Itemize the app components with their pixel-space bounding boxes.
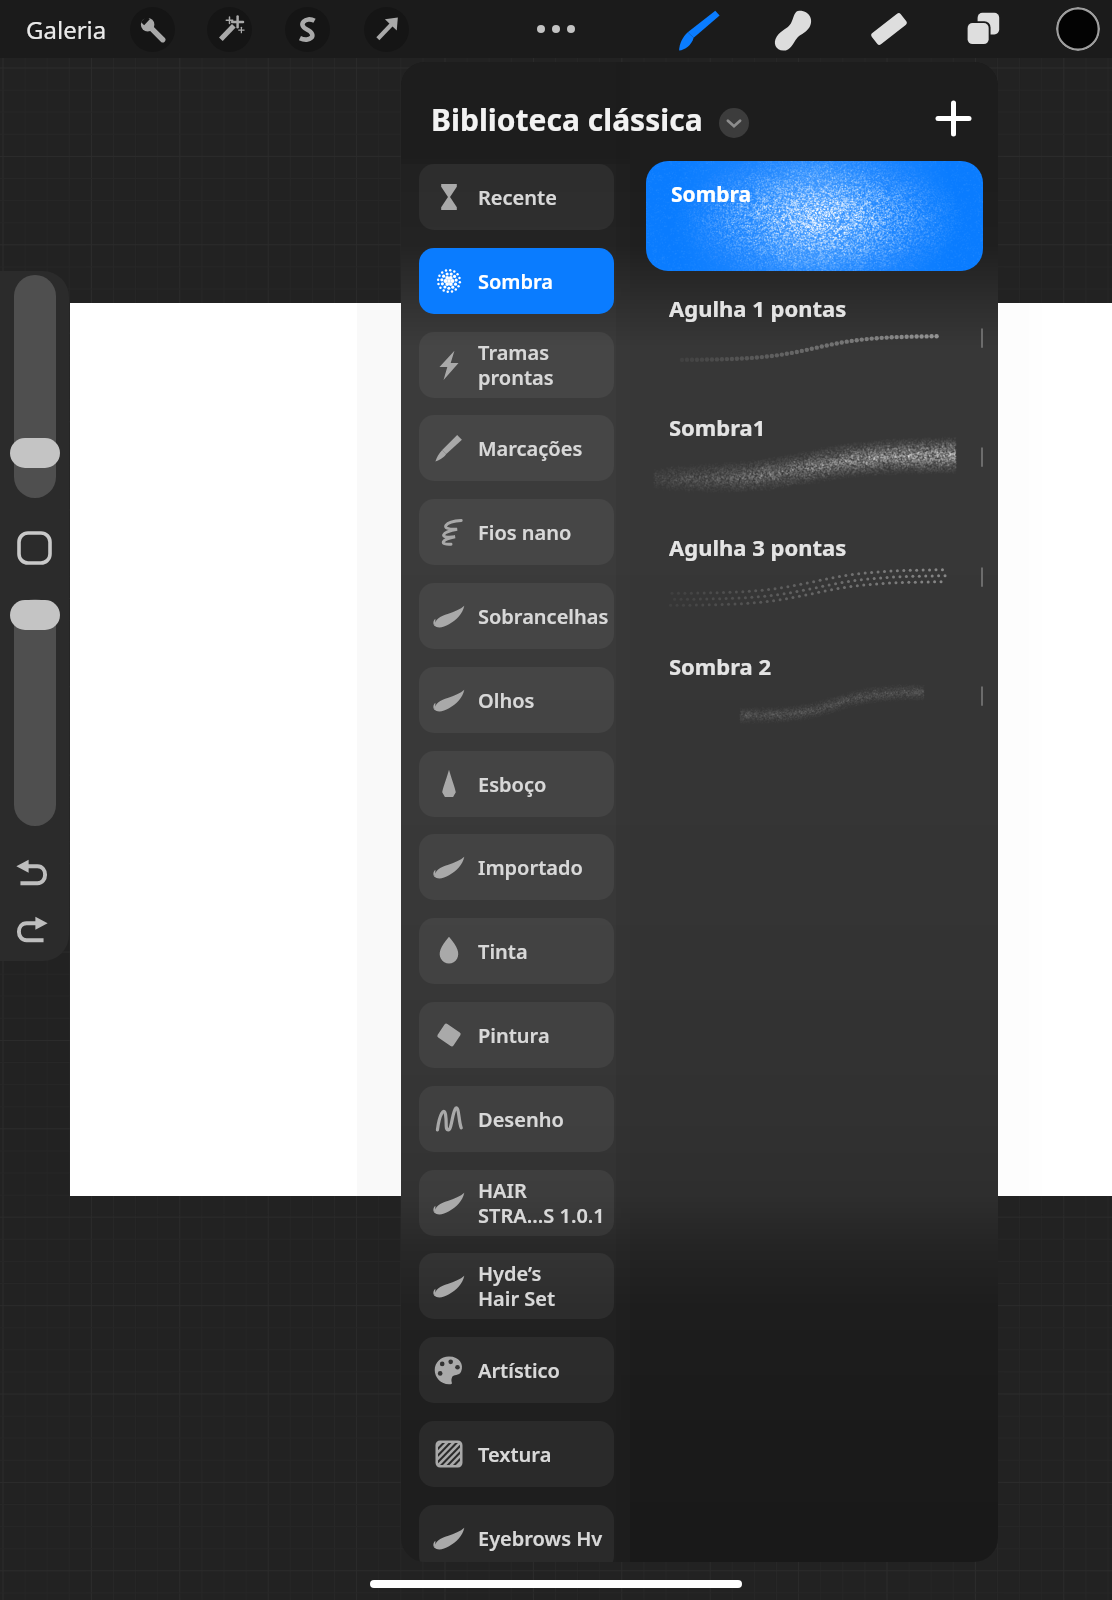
staticText: Tinta (478, 938, 528, 965)
staticText: Olhos (478, 687, 535, 714)
button[interactable]: Selection (285, 7, 330, 52)
staticText: HAIR STRA...S 1.0.1 (478, 1177, 605, 1229)
button[interactable]: Biblioteca clássica (423, 94, 711, 144)
button[interactable]: Actions (130, 7, 175, 52)
staticText: Tramas prontas (478, 339, 554, 391)
button[interactable]: Sombra (646, 161, 983, 271)
button[interactable]: Galeria (18, 6, 115, 52)
staticText: Importado (478, 854, 583, 881)
staticText: Marcações (478, 435, 583, 462)
button[interactable]: Agulha 3 pontas (646, 520, 986, 639)
button[interactable]: Tramas prontas (419, 332, 614, 398)
button[interactable]: More (534, 7, 578, 51)
button[interactable]: Layers (954, 0, 1012, 58)
staticText: Agulha 1 pontas (669, 293, 847, 323)
button[interactable]: Undo (8, 849, 56, 897)
button[interactable]: Importado (419, 834, 614, 900)
staticText: Sombra 2 (669, 651, 772, 681)
button[interactable]: Eyebrows Hv (419, 1505, 614, 1562)
staticText: Esboço (478, 771, 547, 798)
button[interactable]: Add brush (927, 92, 979, 144)
staticText: Artístico (478, 1357, 560, 1384)
button[interactable]: Olhos (419, 667, 614, 733)
staticText: Textura (478, 1441, 552, 1468)
staticText: Sobrancelhas (478, 603, 609, 630)
button[interactable]: Recente (419, 164, 614, 230)
button[interactable]: Smudge (764, 0, 822, 58)
button[interactable]: Eraser (860, 0, 918, 58)
button[interactable]: Adjustments (207, 7, 252, 52)
staticText: Sombra (478, 268, 554, 295)
button[interactable]: Redo (8, 906, 56, 954)
button[interactable]: Brush (669, 0, 727, 58)
button[interactable]: Transform (364, 7, 409, 52)
staticText: Agulha 3 pontas (669, 532, 847, 562)
button[interactable]: Pintura (419, 1002, 614, 1068)
button[interactable]: Sobrancelhas (419, 583, 614, 649)
staticText: Sombra1 (669, 412, 766, 442)
staticText: Sombra (671, 180, 751, 209)
button[interactable]: Textura (419, 1421, 614, 1487)
button[interactable]: Colour (1056, 7, 1100, 51)
button[interactable]: Artístico (419, 1337, 614, 1403)
staticText: Hyde’s Hair Set (478, 1260, 556, 1312)
button[interactable]: Sombra (419, 248, 614, 314)
button[interactable]: Tinta (419, 918, 614, 984)
staticText: Galeria (26, 13, 107, 46)
button[interactable]: Esboço (419, 751, 614, 817)
staticText: Fios nano (478, 519, 572, 546)
button[interactable]: Sombra 2 (646, 639, 986, 758)
button[interactable]: Hyde’s Hair Set (419, 1253, 614, 1319)
staticText: Recente (478, 184, 557, 211)
button[interactable]: HAIR STRA...S 1.0.1 (419, 1170, 614, 1236)
staticText: Pintura (478, 1022, 550, 1049)
button[interactable]: Fios nano (419, 499, 614, 565)
button[interactable]: Desenho (419, 1086, 614, 1152)
staticText: Biblioteca clássica (431, 99, 703, 140)
button[interactable]: Agulha 1 pontas (646, 281, 986, 400)
staticText: Eyebrows Hv (478, 1525, 603, 1552)
button[interactable]: Change library (719, 108, 749, 138)
staticText: Desenho (478, 1106, 564, 1133)
button[interactable]: Marcações (419, 415, 614, 481)
button[interactable]: Sombra1 (646, 400, 986, 519)
